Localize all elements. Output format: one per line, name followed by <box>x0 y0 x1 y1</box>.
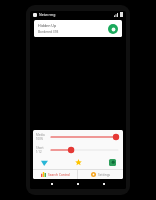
staticText: Netw rmg <box>39 12 56 17</box>
staticText: Search Control <box>48 173 70 177</box>
button[interactable]: Hidden Up <box>34 20 122 37</box>
button[interactable]: Favorite <box>73 157 83 167</box>
button[interactable]: Back <box>48 180 56 188</box>
button[interactable]: Map <box>107 157 117 167</box>
staticText: Media <box>36 133 45 137</box>
button[interactable]: Send <box>39 157 49 167</box>
staticText: Settings <box>98 173 111 177</box>
button[interactable]: Settings <box>78 170 123 179</box>
staticText: 100% <box>36 137 44 141</box>
button[interactable]: Home <box>74 180 82 188</box>
button[interactable]: Search Control <box>33 170 77 179</box>
button[interactable] <box>51 133 118 141</box>
staticText: Short <box>36 146 44 150</box>
button[interactable] <box>51 146 118 154</box>
button[interactable]: Accept <box>108 24 118 34</box>
staticText: 1:12 <box>36 150 42 154</box>
staticText: Hidden Up <box>38 23 57 28</box>
button[interactable]: Recents <box>100 180 108 188</box>
staticText: Bordered 393 <box>38 30 59 34</box>
